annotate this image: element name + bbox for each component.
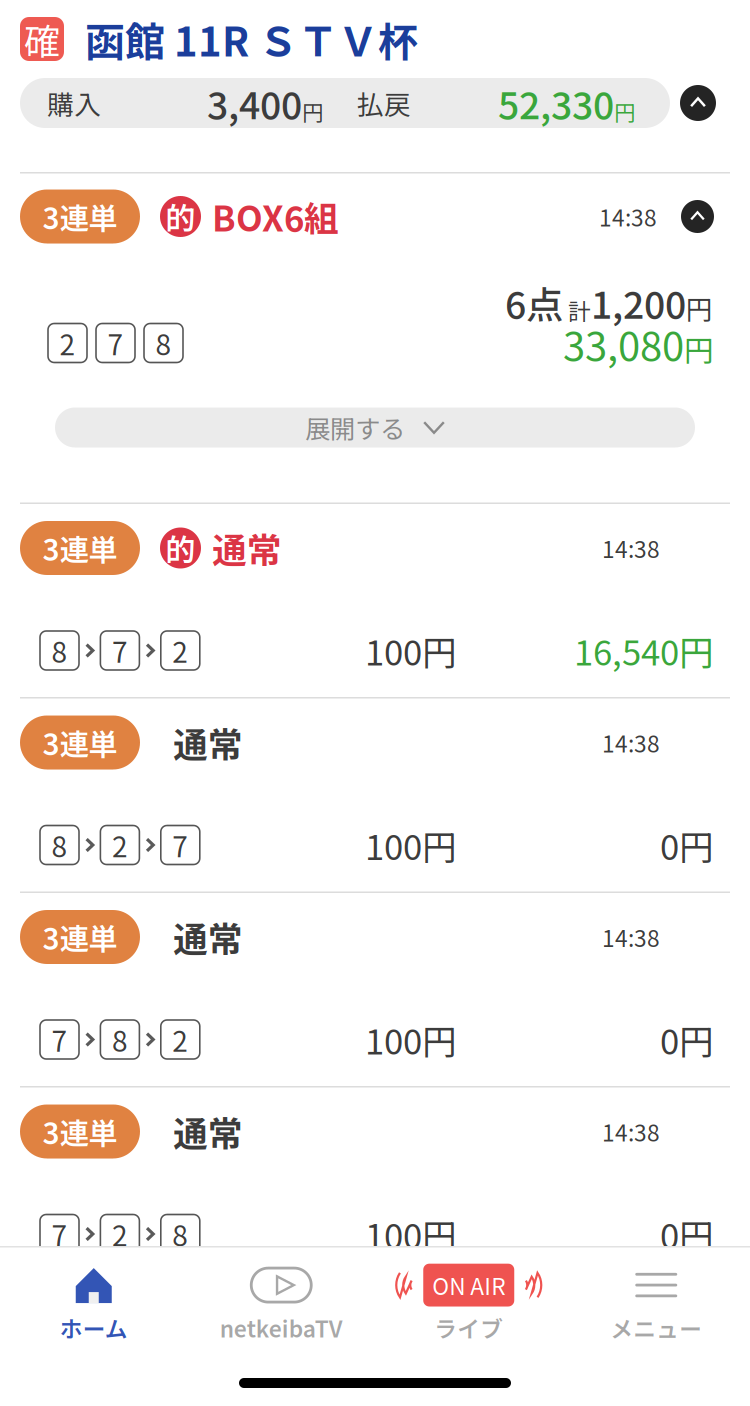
staticText: 6点 計1,200円 xyxy=(505,276,713,329)
button[interactable]: 折りたたむ xyxy=(681,200,714,233)
staticText: 3連単 xyxy=(42,527,117,569)
staticText: 7 xyxy=(112,630,128,671)
staticText: 100円 xyxy=(365,1014,457,1065)
staticText: 14:38 xyxy=(599,200,657,233)
staticText: 払戻 xyxy=(357,84,411,122)
staticText: 100円 xyxy=(365,1209,457,1259)
staticText: 14:38 xyxy=(602,921,660,953)
button[interactable]: netkeibaTV xyxy=(187,1265,375,1345)
staticText: 2 xyxy=(112,825,128,865)
staticText: 3連単 xyxy=(42,916,117,958)
button[interactable]: ON AIR xyxy=(375,1265,562,1345)
staticText: 函館 11R ＳＴＶ杯 xyxy=(85,10,418,68)
button[interactable]: 3連単 xyxy=(0,1087,750,1280)
staticText: 的 xyxy=(165,526,195,570)
button[interactable]: 3連単 xyxy=(0,173,750,502)
staticText: BOX6組 xyxy=(212,191,339,242)
staticText: 33,080円 xyxy=(563,315,713,372)
staticText: 購入 xyxy=(47,84,101,122)
staticText: 3連単 xyxy=(42,1110,117,1153)
staticText: 0円 xyxy=(660,820,714,870)
staticText: 52,330円 xyxy=(498,77,635,129)
staticText: 通常 xyxy=(173,912,243,962)
button[interactable]: メニュー xyxy=(562,1265,750,1345)
staticText: 8 xyxy=(51,630,67,671)
staticText: 7 xyxy=(51,1214,67,1254)
staticText: 通常 xyxy=(212,523,282,573)
staticText: 8 xyxy=(155,323,171,363)
staticText: ライブ xyxy=(434,1311,503,1344)
staticText: 16,540円 xyxy=(574,625,714,676)
staticText: 3連単 xyxy=(42,195,117,238)
button[interactable]: 3連単 xyxy=(0,504,750,697)
staticText: ON AIR xyxy=(432,1269,505,1301)
staticText: 0円 xyxy=(660,1014,714,1065)
button[interactable]: 3連単 xyxy=(0,698,750,891)
staticText: 確 xyxy=(24,13,60,65)
staticText: 14:38 xyxy=(602,532,660,564)
staticText: 8 xyxy=(172,1214,188,1254)
button[interactable]: ホーム xyxy=(0,1265,187,1345)
staticText: 展開する xyxy=(305,409,405,446)
staticText: 2 xyxy=(172,630,188,671)
staticText: 3,400円 xyxy=(207,77,323,129)
staticText: 通常 xyxy=(173,1106,243,1157)
staticText: 0円 xyxy=(660,1209,714,1259)
staticText: 2 xyxy=(112,1214,128,1254)
staticText: 14:38 xyxy=(602,726,660,759)
staticText: 100円 xyxy=(365,820,457,870)
button[interactable]: 3連単 xyxy=(0,893,750,1086)
staticText: 7 xyxy=(51,1019,67,1060)
staticText: 8 xyxy=(51,825,67,865)
staticText: 通常 xyxy=(173,717,243,768)
button[interactable]: 折りたたむ xyxy=(680,85,716,121)
staticText: 3連単 xyxy=(42,721,117,764)
staticText: netkeibaTV xyxy=(220,1311,343,1344)
staticText: 14:38 xyxy=(602,1115,660,1148)
staticText: 的 xyxy=(165,195,195,238)
staticText: ホーム xyxy=(60,1311,128,1344)
staticText: 100円 xyxy=(365,625,457,676)
staticText: メニュー xyxy=(610,1311,702,1344)
staticText: 7 xyxy=(172,825,188,865)
staticText: 2 xyxy=(59,323,75,363)
staticText: 7 xyxy=(107,323,123,363)
staticText: 2 xyxy=(172,1019,188,1060)
staticText: 8 xyxy=(112,1019,128,1060)
